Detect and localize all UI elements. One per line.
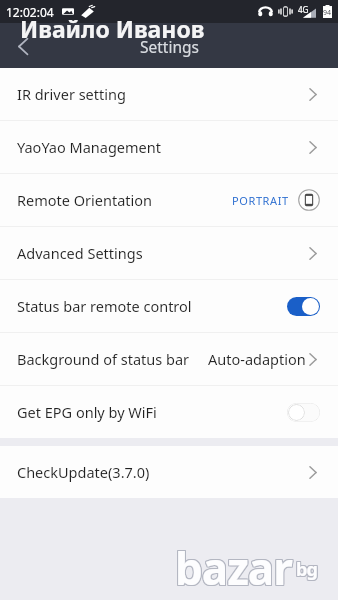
staticText: bg: [296, 556, 317, 581]
staticText: 4G: [298, 4, 309, 15]
staticText: bazar: [174, 539, 291, 599]
button[interactable]: Get EPG only by WiFi: [0, 386, 338, 438]
staticText: bg: [295, 556, 316, 581]
staticText: bg: [297, 556, 318, 581]
staticText: bazar: [175, 538, 292, 598]
staticText: Remote Orientation: [17, 190, 152, 210]
button[interactable]: Switch on: [287, 297, 320, 316]
staticText: 94: [323, 8, 332, 18]
staticText: Background of status bar: [17, 349, 190, 369]
button[interactable]: Status bar remote control: [0, 280, 338, 332]
button[interactable]: Switch off: [287, 403, 320, 422]
staticText: Ивайло Иванов: [20, 13, 205, 44]
staticText: YaoYao Management: [17, 137, 161, 157]
staticText: Auto-adaption: [208, 349, 306, 369]
staticText: bg: [297, 557, 318, 582]
staticText: bazar: [175, 537, 292, 597]
staticText: IR driver setting: [17, 84, 126, 104]
button[interactable]: Back: [0, 23, 50, 68]
staticText: CheckUpdate(3.7.0): [17, 462, 150, 482]
staticText: PORTRAIT: [232, 193, 289, 208]
button[interactable]: Background of status bar: [0, 333, 338, 385]
button[interactable]: CheckUpdate(3.7.0): [0, 446, 338, 498]
staticText: Get EPG only by WiFi: [17, 402, 157, 422]
staticText: 12:02:04: [6, 4, 54, 20]
staticText: bg: [297, 558, 318, 583]
button[interactable]: YaoYao Management: [0, 121, 338, 173]
button[interactable]: Advanced Settings: [0, 227, 338, 279]
staticText: Settings: [140, 36, 199, 57]
staticText: Advanced Settings: [17, 243, 143, 263]
staticText: bazar: [176, 537, 293, 597]
staticText: bazar: [174, 538, 291, 598]
staticText: bazar: [175, 539, 292, 599]
staticText: bazar: [176, 538, 293, 598]
staticText: bazar: [174, 537, 291, 597]
staticText: bg: [296, 558, 317, 583]
staticText: Status bar remote control: [17, 296, 192, 316]
button[interactable]: IR driver setting: [0, 68, 338, 120]
button[interactable]: Remote Orientation: [0, 174, 338, 226]
staticText: bg: [295, 558, 316, 583]
staticText: bg: [295, 557, 316, 582]
staticText: bg: [296, 557, 317, 582]
staticText: bazar: [176, 539, 293, 599]
